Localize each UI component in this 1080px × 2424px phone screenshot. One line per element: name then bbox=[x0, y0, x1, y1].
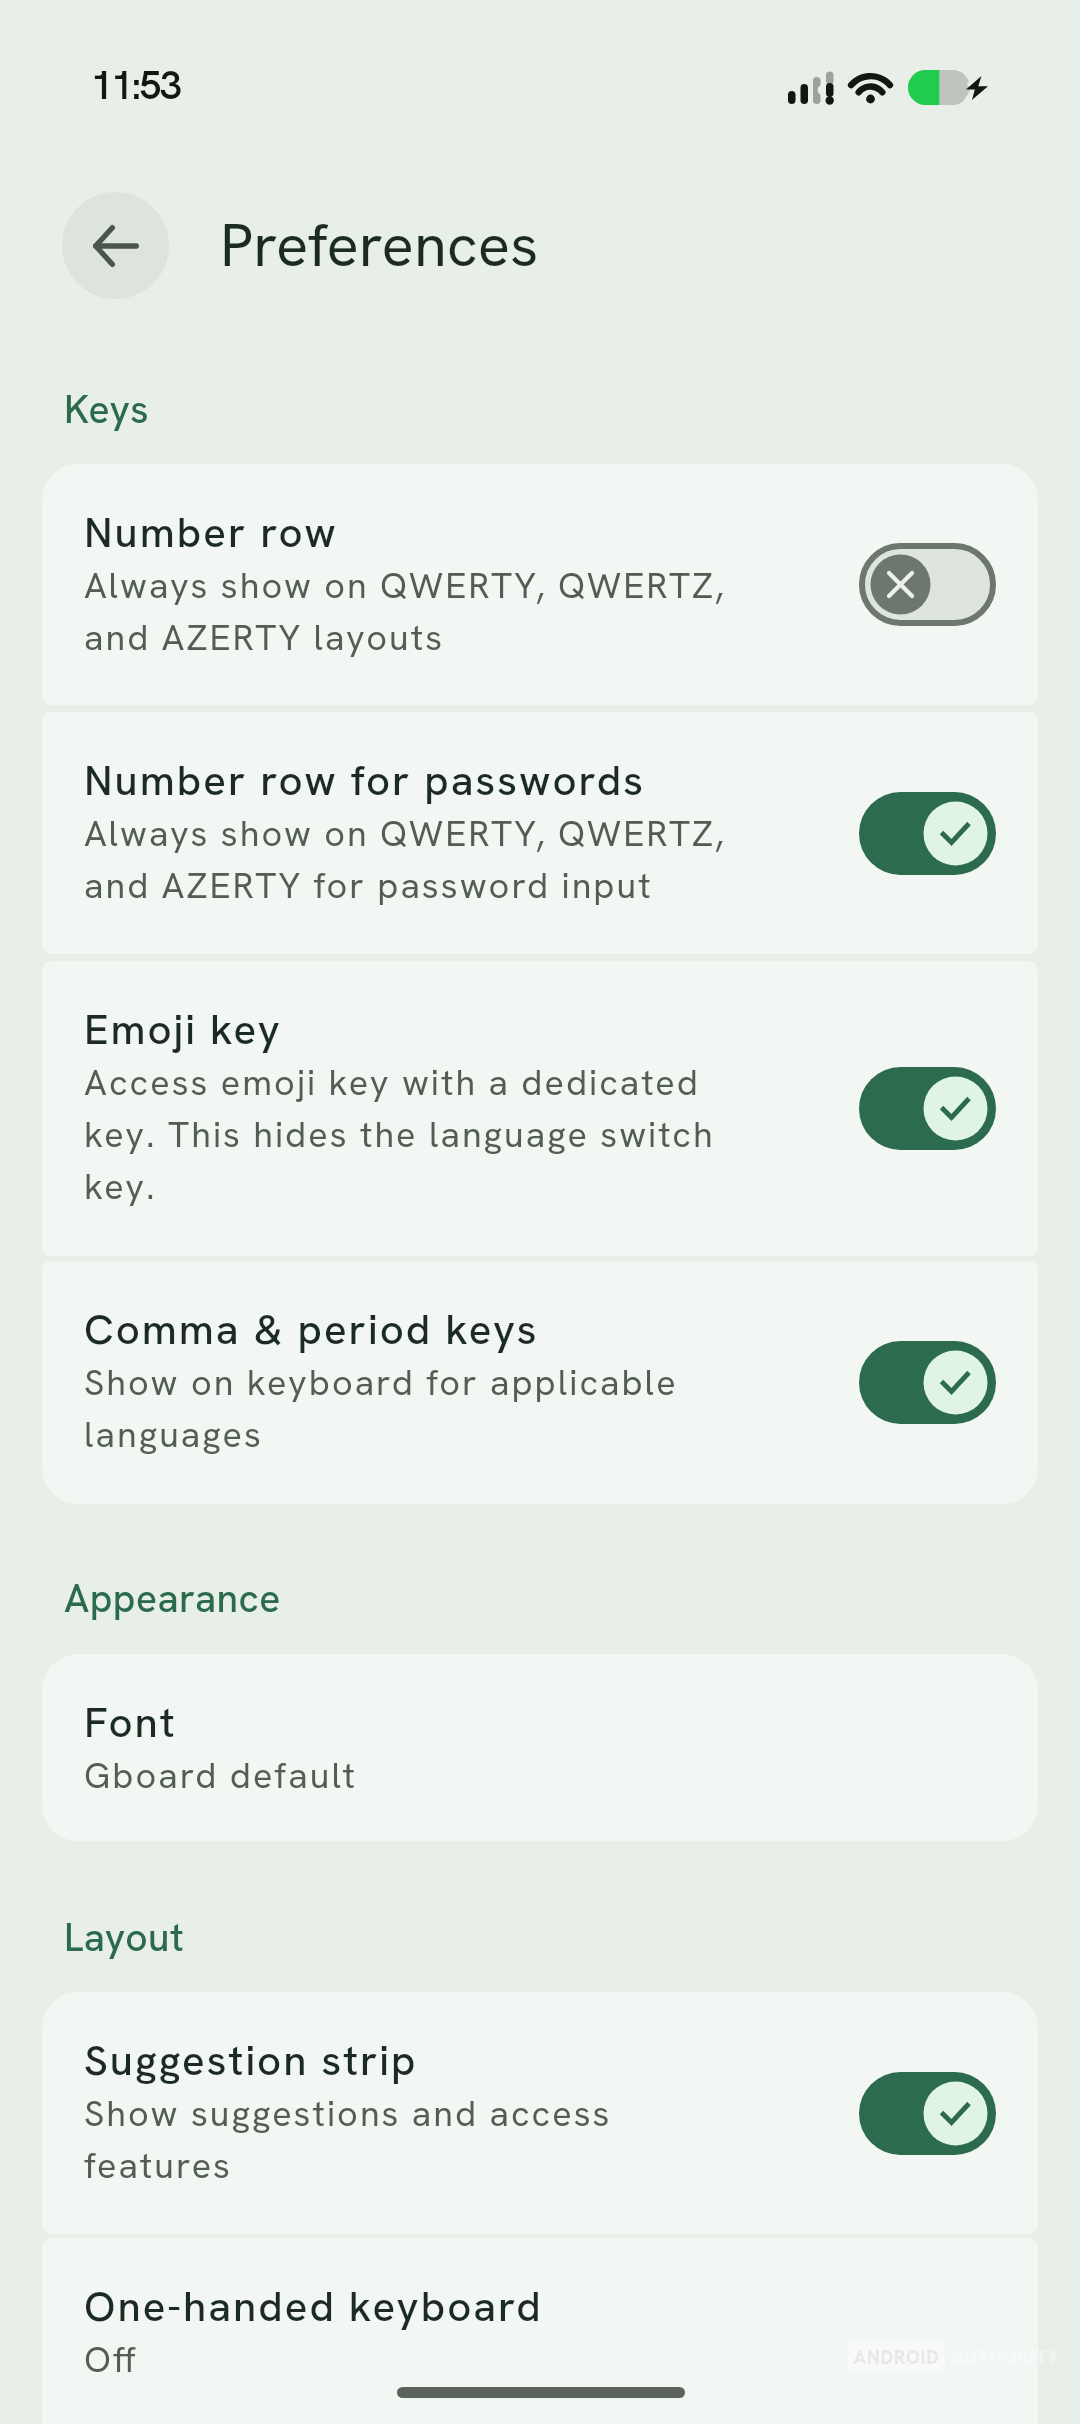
staticText: Emoji key bbox=[84, 1002, 282, 1057]
button[interactable]: Toggle Suggestion strip, on bbox=[859, 2072, 996, 2155]
staticText: Gboard default bbox=[84, 1752, 358, 1799]
staticText: Number row bbox=[84, 505, 338, 560]
staticText: Off bbox=[84, 2336, 138, 2383]
staticText: Always show on QWERTY, QWERTZ, and AZERT… bbox=[84, 810, 726, 909]
button[interactable]: Emoji key bbox=[42, 961, 1038, 1256]
button[interactable]: One-handed keyboard bbox=[42, 2238, 1038, 2424]
staticText: Number row for passwords bbox=[84, 753, 646, 808]
staticText: Show on keyboard for applicable language… bbox=[84, 1359, 678, 1458]
button[interactable]: Number row for passwords bbox=[42, 712, 1038, 954]
button[interactable]: Comma & period keys bbox=[42, 1261, 1038, 1504]
staticText: Always show on QWERTY, QWERTZ, and AZERT… bbox=[84, 562, 726, 661]
staticText: Suggestion strip bbox=[84, 2033, 418, 2088]
button[interactable]: Suggestion strip bbox=[42, 1992, 1038, 2234]
button[interactable]: Toggle Emoji key, on bbox=[859, 1067, 996, 1150]
staticText: One-handed keyboard bbox=[84, 2279, 543, 2334]
button[interactable]: Toggle Comma & period keys, on bbox=[859, 1341, 996, 1424]
button[interactable]: Font bbox=[42, 1654, 1038, 1841]
staticText: Keys bbox=[64, 384, 149, 435]
button[interactable]: Back bbox=[62, 192, 169, 299]
staticText: Appearance bbox=[64, 1573, 281, 1624]
staticText: ANDROID bbox=[853, 2345, 940, 2370]
button[interactable]: Number row bbox=[42, 464, 1038, 705]
staticText: AUTHORITY bbox=[951, 2345, 1060, 2370]
staticText: Access emoji key with a dedicated key. T… bbox=[84, 1059, 715, 1210]
staticText: Font bbox=[84, 1695, 177, 1750]
staticText: Preferences bbox=[220, 206, 539, 284]
button[interactable]: Toggle Number row, off bbox=[859, 543, 996, 626]
staticText: Layout bbox=[64, 1912, 185, 1963]
button[interactable]: Toggle Number row for passwords, on bbox=[859, 792, 996, 875]
staticText: 11:53 bbox=[91, 60, 181, 111]
staticText: Comma & period keys bbox=[84, 1302, 539, 1357]
staticText: Show suggestions and access features bbox=[84, 2090, 612, 2189]
